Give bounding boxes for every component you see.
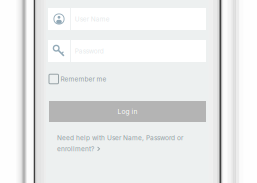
staticText: Password <box>75 47 104 55</box>
staticText: Need help with User Name, Password or <box>57 134 183 142</box>
staticText: User Name <box>75 15 110 23</box>
button[interactable]: Log in <box>48 101 206 122</box>
button[interactable]: Remember me <box>48 74 206 84</box>
staticText: Remember me <box>60 75 106 83</box>
button[interactable]: User Name <box>48 8 206 30</box>
staticText: Log in <box>117 107 137 116</box>
staticText: enrollment? <box>57 145 94 153</box>
button[interactable]: Need help with User Name, Password or <box>48 134 206 153</box>
button[interactable]: Password <box>48 40 206 62</box>
